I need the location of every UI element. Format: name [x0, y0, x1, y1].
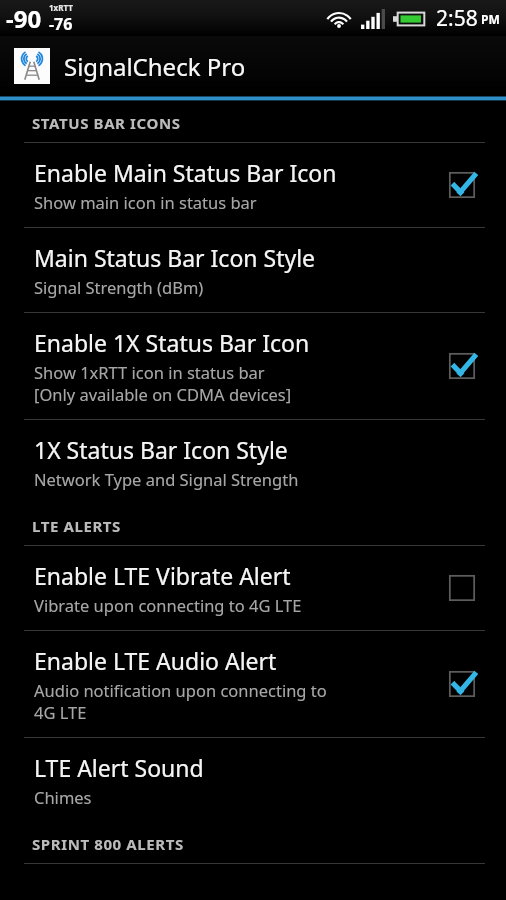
staticText: Network Type and Signal Strength [34, 468, 299, 490]
staticText: Enable LTE Vibrate Alert [34, 560, 291, 591]
button[interactable]: Enable LTE Audio Alert [0, 631, 506, 737]
staticText: Signal Strength (dBm) [34, 276, 204, 298]
button[interactable]: Enable LTE Audio Alert [436, 658, 488, 710]
staticText: 4G LTE [34, 701, 87, 723]
staticText: SignalCheck Pro [64, 50, 246, 83]
staticText: Audio notification upon connecting to [34, 679, 327, 701]
staticText: 1X Status Bar Icon Style [34, 434, 288, 465]
staticText: STATUS BAR ICONS [32, 113, 181, 133]
staticText: 2:58 [436, 4, 478, 33]
staticText: Chimes [34, 786, 92, 808]
staticText: 1xRTT [49, 2, 73, 13]
staticText: LTE Alert Sound [34, 752, 204, 783]
button[interactable]: Enable 1X Status Bar Icon [0, 313, 506, 419]
staticText: Enable 1X Status Bar Icon [34, 327, 310, 358]
button[interactable]: LTE Alert Sound [0, 738, 506, 822]
button[interactable]: Enable Main Status Bar Icon [0, 143, 506, 227]
staticText: -76 [49, 13, 73, 35]
staticText: SPRINT 800 ALERTS [32, 834, 184, 854]
staticText: -90 [6, 2, 42, 35]
staticText: Enable LTE Audio Alert [34, 645, 277, 676]
staticText: Main Status Bar Icon Style [34, 242, 316, 273]
button[interactable]: Main Status Bar Icon Style [0, 228, 506, 312]
staticText: Show main icon in status bar [34, 191, 257, 213]
button[interactable]: Enable LTE Vibrate Alert [436, 562, 488, 614]
button[interactable]: SignalCheck Pro [0, 36, 506, 96]
staticText: PM [481, 11, 500, 27]
button[interactable]: Enable 1X Status Bar Icon [436, 340, 488, 392]
button[interactable]: 1X Status Bar Icon Style [0, 420, 506, 504]
button[interactable]: Enable LTE Vibrate Alert [0, 546, 506, 630]
staticText: [Only available on CDMA devices] [34, 383, 292, 405]
staticText: Vibrate upon connecting to 4G LTE [34, 594, 302, 616]
staticText: LTE ALERTS [32, 516, 121, 536]
button[interactable]: Enable Main Status Bar Icon [436, 159, 488, 211]
staticText: Show 1xRTT icon in status bar [34, 361, 265, 383]
staticText: Enable Main Status Bar Icon [34, 157, 337, 188]
